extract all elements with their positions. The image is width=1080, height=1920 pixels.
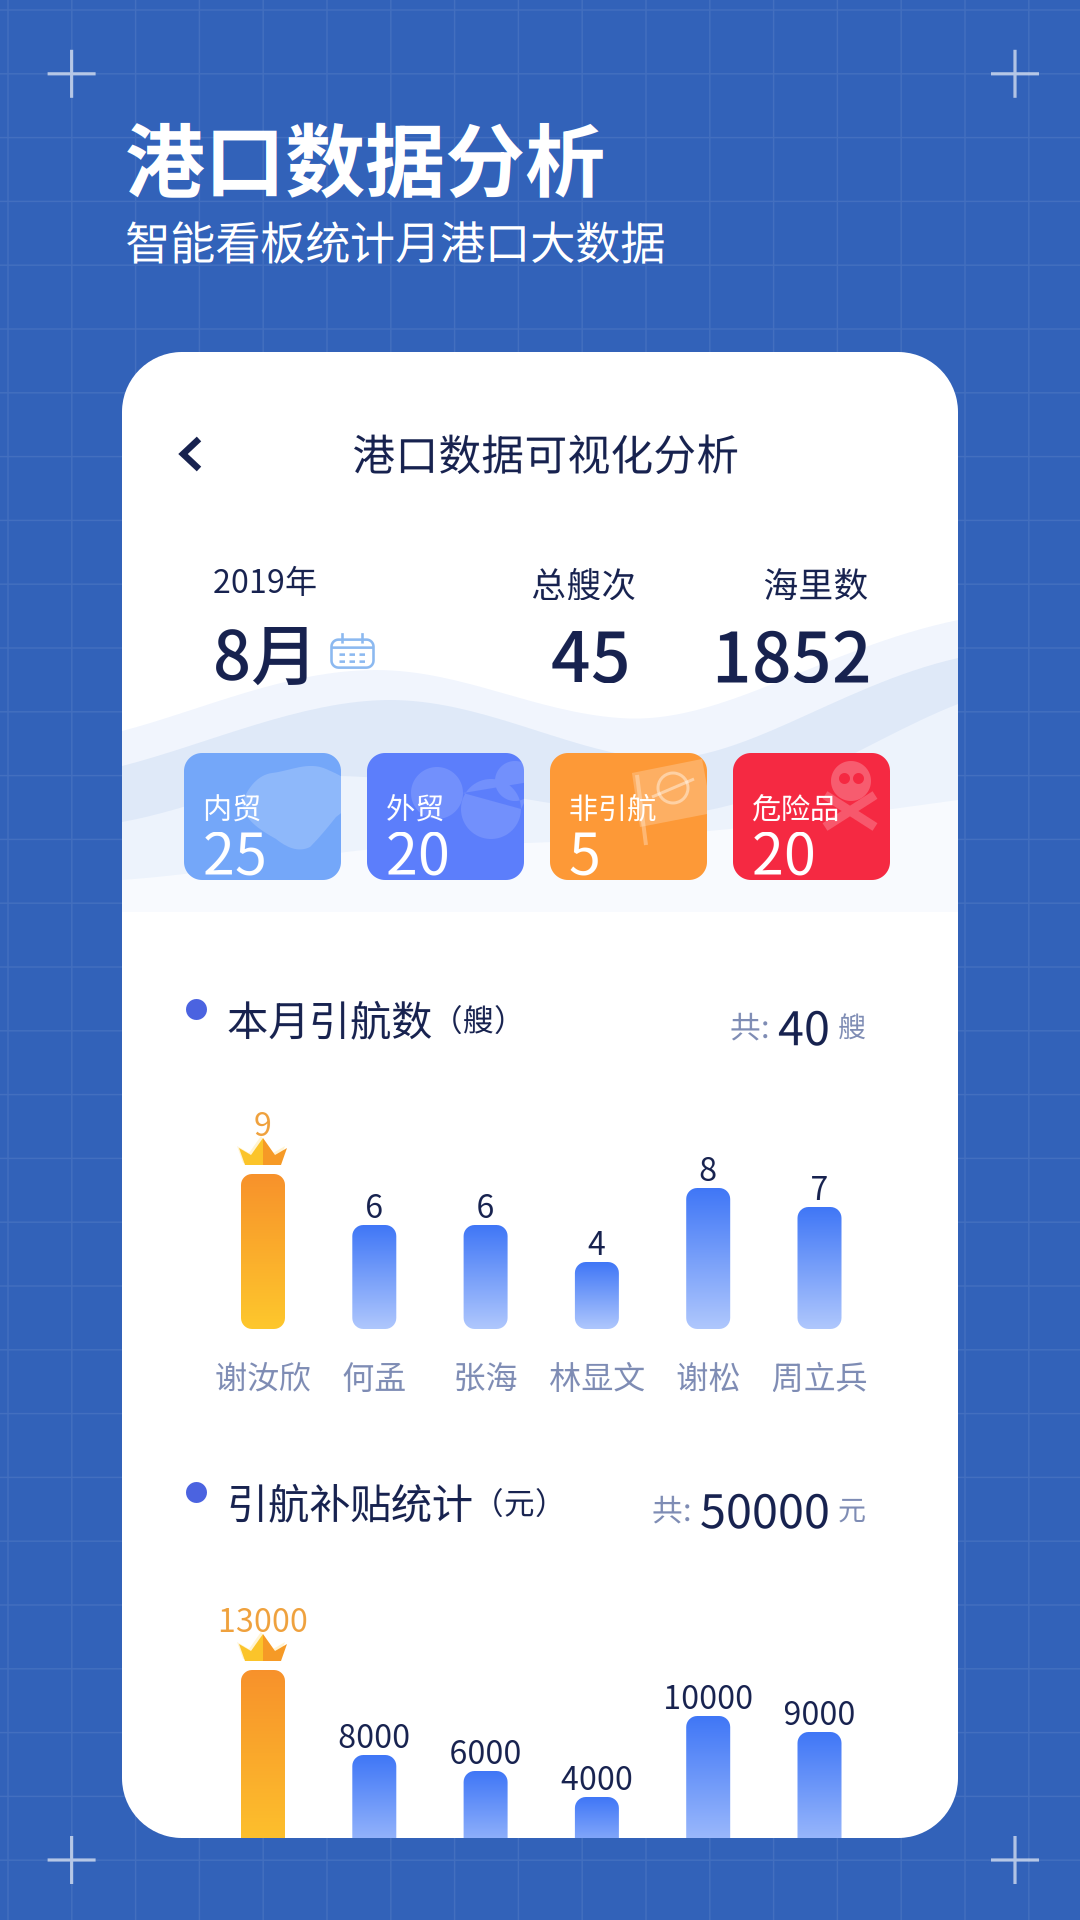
staticText: 总艘次: [531, 557, 636, 607]
staticText: 40: [778, 991, 830, 1059]
staticText: 6000: [450, 1727, 522, 1773]
staticText: 共:: [730, 1003, 770, 1047]
staticText: 本月引航数: [227, 988, 432, 1048]
staticText: 4: [588, 1218, 606, 1264]
staticText: 13000: [218, 1595, 308, 1641]
staticText: 港口数据分析: [125, 98, 605, 214]
staticText: 引航补贴统计: [227, 1471, 473, 1531]
staticText: 共:: [652, 1486, 692, 1530]
staticText: 6: [477, 1181, 495, 1227]
staticText: 50000: [700, 1474, 830, 1542]
staticText: 周立兵: [771, 1352, 867, 1398]
staticText: 谢汝欣: [215, 1352, 311, 1398]
staticText: 4000: [561, 1753, 633, 1799]
staticText: 张海: [454, 1352, 518, 1398]
button[interactable]: Back: [149, 412, 233, 496]
staticText: 8月: [213, 602, 318, 699]
staticText: 危险品: [752, 785, 839, 827]
staticText: 9000: [783, 1688, 855, 1734]
staticText: （艘）: [432, 996, 525, 1040]
staticText: 1852: [712, 602, 872, 702]
staticText: 艘: [838, 1004, 866, 1045]
staticText: 5: [569, 808, 601, 891]
staticText: 45: [551, 602, 631, 702]
button[interactable]: 非引航: [550, 753, 707, 880]
button[interactable]: 危险品: [733, 753, 890, 880]
staticText: 20: [386, 808, 450, 891]
button[interactable]: 外贸: [367, 753, 524, 880]
staticText: 10000: [663, 1672, 753, 1718]
button[interactable]: 内贸: [184, 753, 341, 880]
staticText: 港口数据可视化分析: [352, 421, 739, 483]
staticText: 内贸: [203, 785, 261, 827]
staticText: 元: [838, 1487, 866, 1528]
staticText: （元）: [473, 1479, 566, 1523]
staticText: 7: [810, 1163, 828, 1209]
staticText: 外贸: [386, 785, 444, 827]
staticText: 9: [254, 1099, 272, 1145]
staticText: 6: [365, 1181, 383, 1227]
staticText: 25: [203, 808, 267, 891]
staticText: 智能看板统计月港口大数据: [125, 207, 665, 273]
staticText: 2019年: [213, 556, 317, 602]
staticText: 谢松: [676, 1352, 740, 1398]
staticText: 20: [752, 808, 816, 891]
staticText: 8000: [338, 1711, 410, 1757]
staticText: 海里数: [763, 557, 868, 607]
staticText: 非引航: [569, 785, 656, 827]
staticText: 林显文: [549, 1352, 645, 1398]
staticText: 8: [699, 1144, 717, 1190]
staticText: 何孟: [342, 1352, 406, 1398]
